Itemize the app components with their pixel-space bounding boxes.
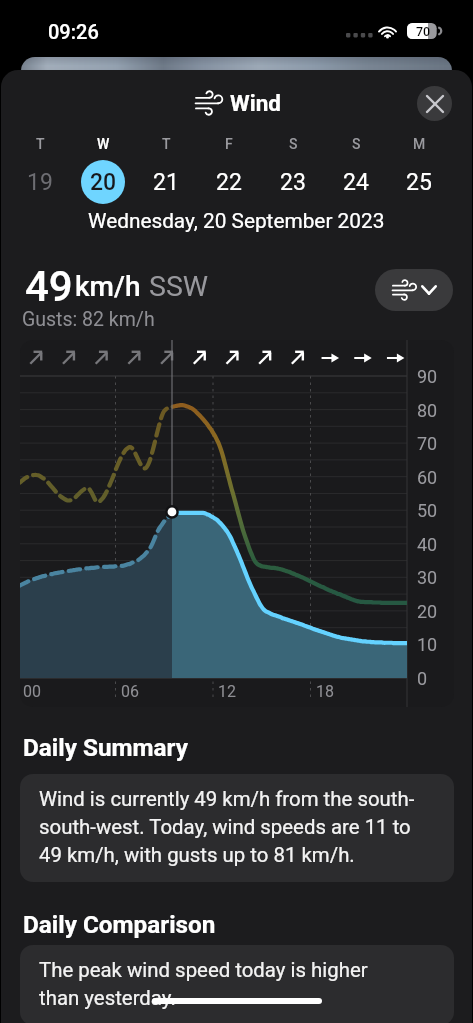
staticText: 40 bbox=[417, 534, 438, 555]
button[interactable]: Wind is currently 49 km/h from the south… bbox=[20, 774, 454, 882]
button[interactable]: Wind bbox=[160, 85, 290, 121]
staticText: 90 bbox=[417, 366, 438, 387]
staticText: 30 bbox=[417, 567, 438, 588]
button[interactable] bbox=[388, 132, 450, 206]
staticText: S bbox=[352, 136, 361, 152]
button[interactable] bbox=[9, 132, 71, 206]
button[interactable]: 0 bbox=[20, 340, 454, 707]
staticText: 60 bbox=[417, 467, 438, 488]
staticText: 06 bbox=[121, 682, 139, 701]
button[interactable]: Close bbox=[417, 86, 452, 121]
staticText: 24 bbox=[343, 169, 369, 196]
staticText: T bbox=[162, 136, 171, 152]
staticText: SSW bbox=[149, 270, 209, 303]
staticText: Daily Summary bbox=[23, 733, 188, 761]
staticText: Wind is currently 49 km/h from the south… bbox=[39, 787, 415, 867]
staticText: The peak wind speed today is higher than… bbox=[39, 958, 368, 1010]
staticText: S bbox=[289, 136, 298, 152]
staticText: F bbox=[225, 136, 233, 152]
staticText: km/h bbox=[75, 270, 141, 303]
staticText: 00 bbox=[23, 682, 41, 701]
staticText: 18 bbox=[316, 682, 334, 701]
staticText: 22 bbox=[216, 169, 242, 196]
button[interactable] bbox=[72, 132, 134, 206]
staticText: 20 bbox=[90, 169, 117, 196]
staticText: 10 bbox=[417, 634, 438, 655]
staticText: T bbox=[36, 136, 45, 152]
button[interactable] bbox=[135, 132, 197, 206]
button[interactable] bbox=[262, 132, 324, 206]
staticText: 70 bbox=[416, 24, 431, 39]
button[interactable]: The peak wind speed today is higher than… bbox=[20, 945, 454, 1023]
staticText: 20 bbox=[417, 601, 438, 622]
staticText: 25 bbox=[406, 169, 432, 196]
button[interactable] bbox=[198, 132, 260, 206]
staticText: Daily Comparison bbox=[23, 910, 216, 938]
staticText: 19 bbox=[27, 169, 53, 196]
staticText: 09:26 bbox=[48, 20, 99, 42]
staticText: 50 bbox=[417, 500, 438, 521]
staticText: 80 bbox=[417, 400, 438, 421]
staticText: Wind bbox=[230, 90, 281, 116]
staticText: W bbox=[97, 136, 110, 152]
staticText: 0 bbox=[417, 668, 428, 689]
staticText: 49 bbox=[25, 262, 73, 306]
staticText: Wednesday, 20 September 2023 bbox=[88, 209, 385, 233]
staticText: 70 bbox=[417, 433, 438, 454]
button[interactable]: Change weather layer bbox=[375, 269, 453, 311]
staticText: 23 bbox=[280, 169, 306, 196]
staticText: 12 bbox=[218, 682, 236, 701]
button[interactable] bbox=[325, 132, 387, 206]
staticText: M bbox=[413, 136, 426, 152]
staticText: 21 bbox=[153, 169, 179, 196]
staticText: Gusts: 82 km/h bbox=[22, 308, 155, 331]
